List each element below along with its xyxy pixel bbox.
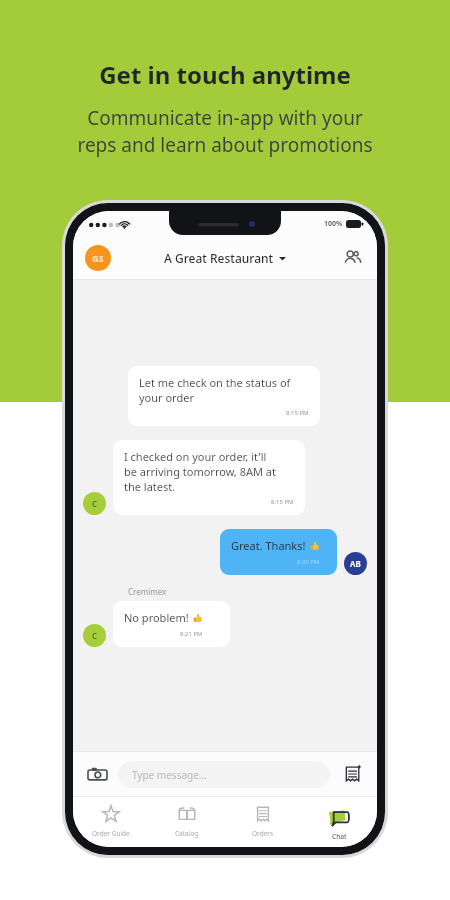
staticText: 100% bbox=[324, 219, 343, 229]
staticText: Get in touch anytime bbox=[99, 58, 351, 91]
staticText: Great. Thanks! bbox=[231, 538, 306, 553]
staticText: 8:20 PM bbox=[297, 558, 320, 566]
staticText: A Great Restaurant bbox=[164, 250, 274, 266]
button[interactable]: Chat bbox=[301, 797, 377, 847]
staticText: 8:15 PM bbox=[271, 498, 294, 506]
staticText: I checked on your order, it'll be arrivi… bbox=[124, 449, 276, 494]
button[interactable]: I checked on your order, it'll be arrivi… bbox=[113, 440, 305, 515]
button[interactable]: Order Guide bbox=[73, 797, 149, 847]
staticText: C bbox=[92, 630, 98, 641]
button[interactable]: Let me check on the status of your order bbox=[128, 366, 320, 426]
button[interactable]: C bbox=[83, 624, 106, 647]
staticText: Order Guide bbox=[92, 829, 130, 838]
button[interactable]: AB bbox=[344, 552, 367, 575]
staticText: AB bbox=[350, 558, 361, 569]
button[interactable]: C bbox=[83, 492, 106, 515]
button[interactable]: New order bbox=[340, 761, 366, 787]
staticText: C bbox=[92, 498, 98, 509]
button[interactable]: Orders bbox=[225, 797, 301, 847]
staticText: Communicate in-app with your reps and le… bbox=[77, 105, 373, 158]
staticText: Cremimex bbox=[128, 586, 167, 597]
button[interactable]: GS bbox=[85, 245, 111, 271]
staticText: GS bbox=[92, 252, 104, 264]
button[interactable]: A Great Restaurant bbox=[164, 250, 286, 266]
staticText: Chat bbox=[332, 832, 347, 841]
staticText: 8:15 PM bbox=[286, 409, 309, 417]
staticText: Type message... bbox=[132, 768, 207, 782]
button[interactable]: Contacts bbox=[339, 245, 365, 271]
staticText: No problem! bbox=[124, 610, 189, 625]
button[interactable]: Catalog bbox=[149, 797, 225, 847]
staticText: Orders bbox=[252, 829, 274, 838]
staticText: 8:21 PM bbox=[180, 630, 203, 638]
button[interactable]: No problem! bbox=[113, 601, 230, 647]
button[interactable]: Great. Thanks! bbox=[220, 529, 337, 575]
button[interactable]: Camera bbox=[84, 761, 110, 787]
staticText: Catalog bbox=[175, 829, 199, 838]
staticText: Let me check on the status of your order bbox=[139, 375, 291, 405]
button[interactable]: Type message... bbox=[118, 761, 330, 788]
